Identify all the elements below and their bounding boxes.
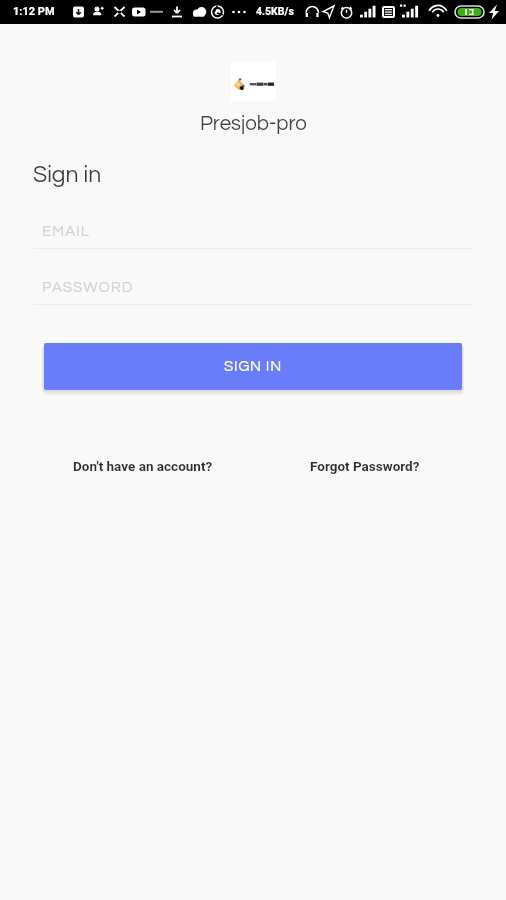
staticText: SIGN IN xyxy=(224,359,282,374)
staticText: 1:12 PM xyxy=(13,5,55,18)
button[interactable]: Don't have an account? xyxy=(69,455,217,477)
staticText: 4.5KB/s xyxy=(256,5,294,17)
staticText: EMAIL xyxy=(42,224,90,239)
staticText: PASSWORD xyxy=(42,280,134,295)
staticText: Sign in xyxy=(33,163,102,187)
staticText: Presjob-pro xyxy=(200,113,307,134)
button[interactable]: Forgot Password? xyxy=(306,455,424,477)
staticText: Don't have an account? xyxy=(73,458,213,474)
button[interactable]: SIGN IN xyxy=(44,343,462,390)
button[interactable]: EMAIL xyxy=(33,218,473,249)
staticText: Forgot Password? xyxy=(310,458,420,474)
other: Presjob-pro logo xyxy=(231,62,276,101)
button[interactable]: PASSWORD xyxy=(33,274,473,305)
